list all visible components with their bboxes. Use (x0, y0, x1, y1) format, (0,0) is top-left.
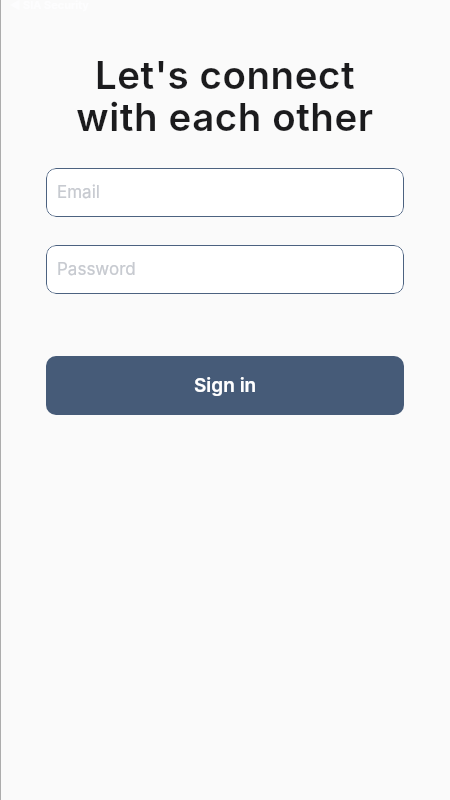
staticText: Email (57, 182, 100, 203)
staticText: Let's connect with each other (0, 52, 450, 141)
button[interactable]: Password (46, 245, 404, 294)
button[interactable]: Email (46, 168, 404, 217)
button[interactable]: Sign in (46, 356, 404, 415)
staticText: Password (57, 259, 136, 280)
staticText: Sign in (194, 374, 257, 397)
